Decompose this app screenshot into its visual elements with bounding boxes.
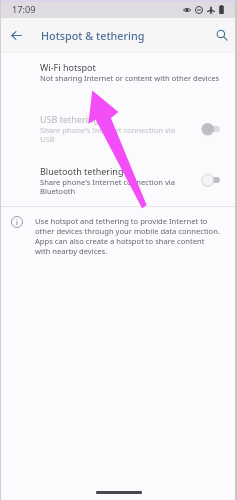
staticText: 17:09	[12, 3, 36, 16]
staticText: Hotspot & tethering	[41, 28, 145, 43]
button[interactable]: Back	[3, 22, 30, 49]
staticText: Share phone's Internet connection via Bl…	[40, 177, 190, 197]
button[interactable]: Search	[209, 22, 235, 48]
staticText: Share phone's Internet connection via US…	[40, 125, 190, 145]
button[interactable]: USB tethering	[0, 106, 237, 152]
button[interactable]: Wi-Fi hotspot	[0, 55, 237, 89]
staticText: Not sharing Internet or content with oth…	[40, 73, 220, 83]
staticText: Use hotspot and tethering to provide Int…	[35, 216, 220, 256]
staticText: USB tethering	[40, 113, 100, 125]
staticText: Bluetooth tethering	[40, 165, 124, 177]
staticText: Wi-Fi hotspot	[40, 61, 96, 73]
button[interactable]: Bluetooth tethering	[0, 158, 237, 204]
button[interactable]: Toggle Bluetooth tethering	[197, 171, 223, 189]
button[interactable]: USB tethering unavailable	[197, 120, 223, 138]
